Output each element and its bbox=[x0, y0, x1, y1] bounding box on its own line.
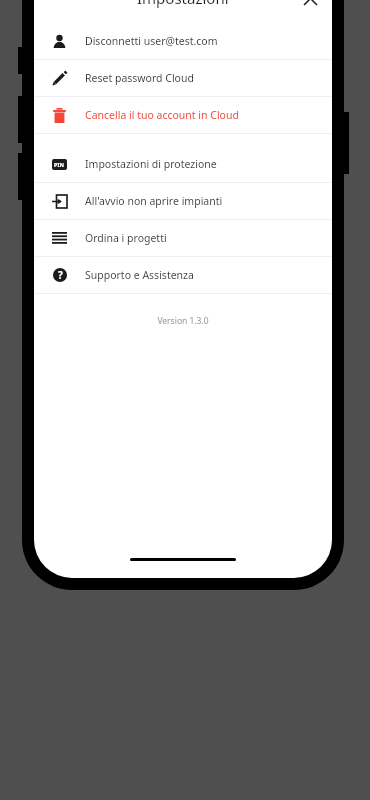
staticText: Impostazioni di protezione bbox=[85, 157, 217, 171]
button[interactable]: PIN bbox=[34, 146, 332, 182]
staticText: Ordina i progetti bbox=[85, 231, 167, 245]
staticText: Cancella il tuo account in Cloud bbox=[85, 108, 239, 122]
staticText: Supporto e Assistenza bbox=[85, 268, 194, 282]
staticText: Disconnetti user@test.com bbox=[85, 34, 218, 48]
staticText: Version 1.3.0 bbox=[34, 315, 332, 327]
button[interactable]: All'avvio non aprire impianti bbox=[34, 183, 332, 219]
staticText: Reset password Cloud bbox=[85, 71, 194, 85]
button[interactable]: Cancella il tuo account in Cloud bbox=[34, 97, 332, 133]
button[interactable]: Chiudi bbox=[296, 0, 324, 10]
staticText: Impostazioni bbox=[137, 0, 229, 8]
button[interactable]: ? bbox=[34, 257, 332, 293]
staticText: All'avvio non aprire impianti bbox=[85, 194, 223, 208]
staticText: ? bbox=[58, 268, 63, 282]
button[interactable]: Ordina i progetti bbox=[34, 220, 332, 256]
button[interactable]: Reset password Cloud bbox=[34, 60, 332, 96]
button[interactable]: Disconnetti user@test.com bbox=[34, 23, 332, 59]
staticText: PIN bbox=[54, 161, 65, 168]
